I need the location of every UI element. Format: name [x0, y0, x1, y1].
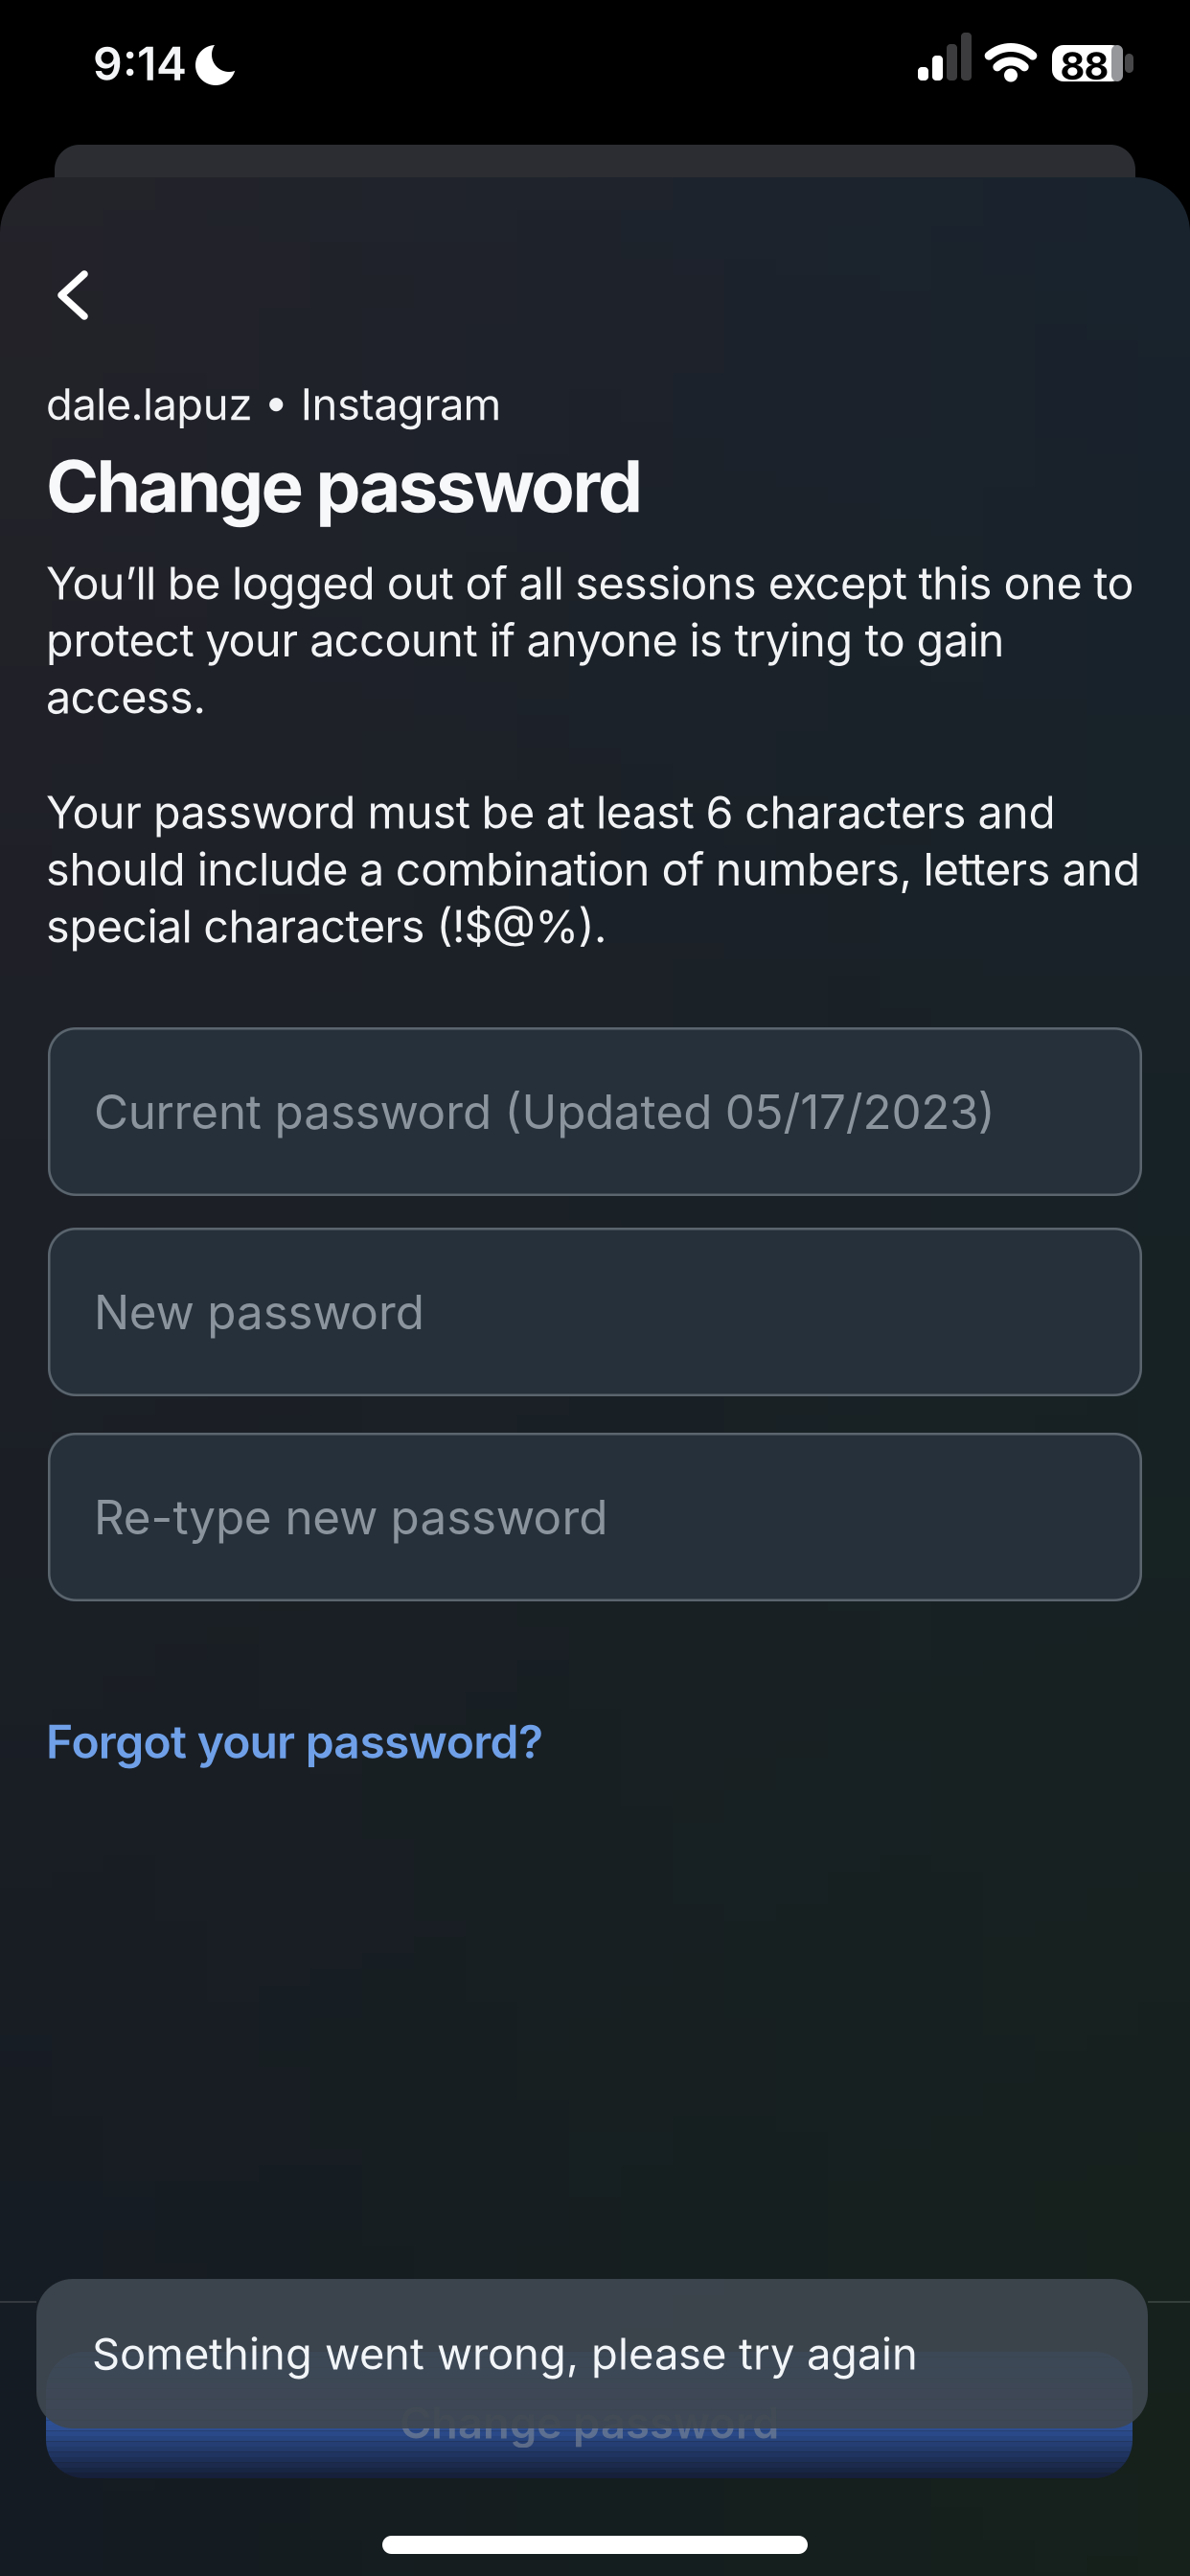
- staticText: dale.lapuz • Instagram: [46, 379, 502, 430]
- button[interactable]: Current password (Updated 05/17/2023): [48, 1027, 1142, 1196]
- button[interactable]: Re-type new password: [48, 1433, 1142, 1601]
- staticText: New password: [94, 1284, 424, 1340]
- staticText: 9:14: [93, 36, 187, 91]
- staticText: Your password must be at least 6 charact…: [46, 786, 1141, 953]
- staticText: 88: [1061, 43, 1109, 88]
- staticText: Re-type new password: [94, 1489, 608, 1545]
- staticText: Change password: [46, 443, 643, 529]
- button[interactable]: Forgot your password?: [46, 1714, 543, 1769]
- button[interactable]: New password: [48, 1228, 1142, 1396]
- button[interactable]: Back: [40, 253, 105, 337]
- staticText: Something went wrong, please try again: [92, 2328, 918, 2379]
- button[interactable]: Change password: [46, 2352, 1133, 2478]
- staticText: Current password (Updated 05/17/2023): [94, 1084, 995, 1140]
- staticText: Forgot your password?: [46, 1714, 543, 1769]
- staticText: Change password: [400, 2397, 779, 2448]
- staticText: You’ll be logged out of all sessions exc…: [46, 557, 1134, 724]
